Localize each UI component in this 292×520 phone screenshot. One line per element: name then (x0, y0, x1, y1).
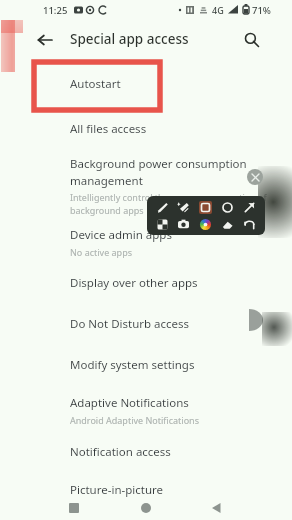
staticText: Do Not Disturb access (70, 316, 190, 332)
button[interactable]: Eraser (216, 216, 238, 232)
staticText: Autostart (70, 76, 121, 92)
staticText: No active apps (70, 246, 132, 258)
staticText: Picture-in-picture (70, 482, 164, 498)
button[interactable]: Modify system settings (70, 357, 270, 373)
button[interactable]: Notification access (70, 444, 270, 460)
button[interactable]: Back (33, 28, 57, 52)
button[interactable]: Pen (152, 199, 173, 215)
button[interactable]: Device admin apps (70, 227, 270, 255)
button[interactable]: Back (209, 500, 225, 516)
button[interactable]: Background power consumption (70, 156, 270, 212)
button[interactable]: Home (138, 500, 154, 516)
other: Autostart highlight (34, 62, 160, 110)
button[interactable]: Do Not Disturb access (70, 316, 270, 332)
button[interactable]: Capture (173, 216, 194, 232)
button[interactable]: Mosaic (152, 216, 173, 232)
staticText: Background power consumption (70, 156, 247, 172)
staticText: Android Adaptive Notifications (70, 414, 199, 426)
staticText: background apps (70, 204, 144, 216)
button[interactable]: Display over other apps (70, 275, 270, 291)
button[interactable]: Picture-in-picture (70, 482, 270, 498)
button[interactable]: Close markup toolbar (247, 169, 263, 185)
staticText: 11:25 (43, 4, 68, 17)
button[interactable]: All files access (70, 121, 270, 137)
staticText: Notification access (70, 444, 171, 460)
staticText: Modify system settings (70, 357, 195, 373)
staticText: Special app access (70, 30, 189, 48)
button[interactable]: Search (240, 28, 264, 52)
button[interactable]: Color (194, 216, 216, 232)
staticText: Adaptive Notifications (70, 395, 189, 411)
staticText: Intelligently control the power consumpt… (70, 191, 267, 203)
staticText: Display over other apps (70, 275, 198, 291)
button[interactable]: Recent apps (66, 500, 82, 516)
button[interactable]: Arrow (238, 199, 260, 215)
button[interactable]: Marker (173, 199, 194, 215)
button[interactable]: Adaptive Notifications (70, 395, 270, 423)
button[interactable]: Autostart (70, 76, 270, 92)
staticText: management (70, 173, 143, 189)
staticText: 71% (252, 4, 271, 17)
button[interactable]: Undo (238, 216, 260, 232)
button[interactable]: Rectangle (194, 199, 216, 215)
staticText: All files access (70, 121, 147, 137)
staticText: 4G (212, 4, 224, 16)
button[interactable]: Ellipse (216, 199, 238, 215)
staticText: Device admin apps (70, 227, 172, 243)
